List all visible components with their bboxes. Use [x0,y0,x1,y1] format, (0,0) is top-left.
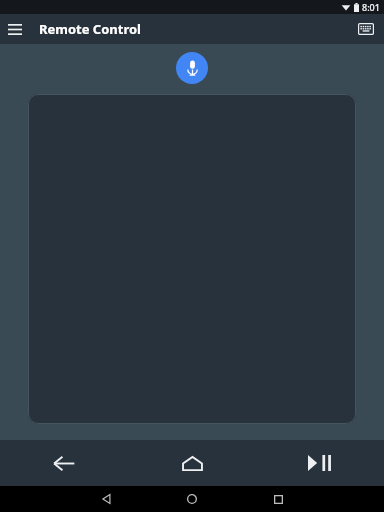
button[interactable]: System back [93,486,119,512]
button[interactable]: Back [0,440,128,486]
button[interactable]: Touchpad [28,94,356,424]
button[interactable]: Show keyboard [351,14,381,44]
button[interactable]: Play or pause [256,440,384,486]
button[interactable]: Recent apps [265,486,291,512]
staticText: 8:01 [362,1,380,13]
button[interactable]: System home [179,486,205,512]
button[interactable]: Open navigation menu [0,14,30,44]
button[interactable]: Voice input [176,52,208,84]
staticText: Remote Control [39,20,141,38]
button[interactable]: Home [128,440,256,486]
